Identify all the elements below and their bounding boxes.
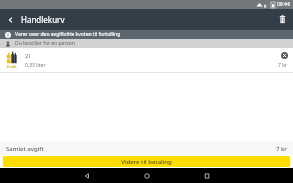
button[interactable]: Tilbake bbox=[57, 168, 117, 183]
button[interactable]: Varer over den avgiftsfrie kvoten til fo… bbox=[0, 30, 293, 39]
button[interactable]: Videre til betaling bbox=[3, 156, 290, 167]
button[interactable]: Tilbake bbox=[0, 9, 21, 30]
staticText: Varer over den avgiftsfrie kvoten til fo… bbox=[15, 31, 121, 38]
staticText: 2l bbox=[25, 52, 30, 60]
staticText: Frukt bbox=[7, 64, 17, 69]
button[interactable]: Fjern vare bbox=[279, 50, 289, 60]
staticText: Videre til betaling bbox=[121, 158, 172, 166]
staticText: 7 kr bbox=[276, 145, 287, 153]
staticText: 7 kr bbox=[278, 62, 287, 69]
staticText: 0,33 liter bbox=[25, 62, 46, 69]
button[interactable]: Hjem bbox=[117, 168, 177, 183]
button[interactable]: Oversikt bbox=[177, 168, 237, 183]
staticText: Samlet avgift bbox=[6, 145, 44, 153]
staticText: 09:44 bbox=[277, 1, 290, 8]
button[interactable]: Slett handlekurv bbox=[272, 9, 293, 30]
staticText: Du bestiller for en person bbox=[15, 40, 75, 47]
button[interactable]: Du bestiller for en person bbox=[0, 39, 293, 48]
button[interactable]: Frukt bbox=[0, 48, 293, 73]
staticText: Handlekurv bbox=[21, 14, 65, 25]
